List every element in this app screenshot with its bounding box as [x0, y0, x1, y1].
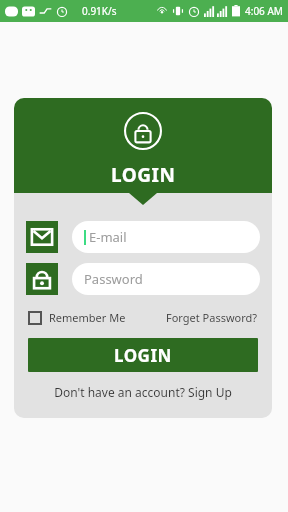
button[interactable]: E-mail — [72, 221, 260, 253]
button[interactable]: Password — [72, 263, 260, 295]
staticText: Remember Me — [49, 310, 126, 325]
staticText: LOGIN — [111, 162, 176, 188]
button[interactable]: Remember Me — [28, 310, 126, 325]
staticText: Forget Password? — [166, 310, 258, 325]
staticText: 0.91K/s — [82, 4, 117, 18]
staticText: Don't have an account? Sign Up — [54, 384, 232, 400]
button[interactable]: Email — [26, 221, 58, 253]
button[interactable]: Password — [26, 263, 58, 295]
staticText: 4:06 AM — [245, 4, 283, 18]
staticText: E-mail — [89, 228, 127, 246]
button[interactable]: LOGIN — [28, 338, 258, 372]
staticText: Password — [84, 270, 143, 288]
staticText: LOGIN — [114, 344, 172, 367]
button[interactable]: Don't have an account? Sign Up — [26, 384, 260, 400]
button[interactable]: Forget Password? — [166, 310, 258, 325]
